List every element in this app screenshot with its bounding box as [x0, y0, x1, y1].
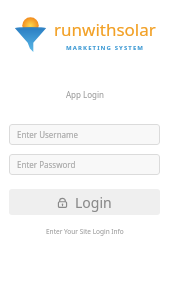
staticText: MARKETING SYSTEM [66, 44, 145, 52]
staticText: Enter Password [17, 159, 76, 170]
staticText: Enter Your Site Login Info [46, 227, 124, 236]
button[interactable]: Password field [9, 154, 160, 175]
staticText: Enter Username [17, 129, 79, 140]
staticText: App Login [66, 89, 104, 100]
button[interactable]: Username field [9, 124, 160, 145]
button[interactable]: Login [9, 189, 160, 215]
staticText: runwithsolar [54, 18, 156, 41]
staticText: Login [75, 193, 112, 212]
